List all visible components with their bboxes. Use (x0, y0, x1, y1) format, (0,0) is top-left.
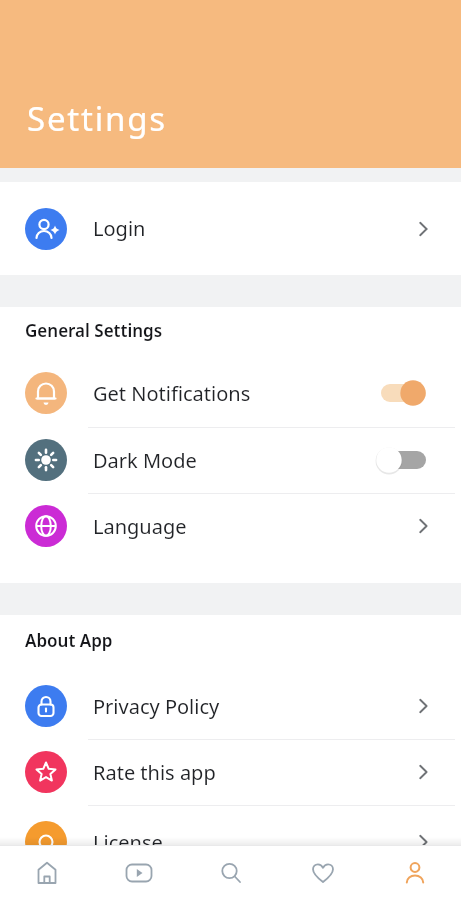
staticText: Rate this app (93, 759, 216, 786)
button[interactable] (369, 845, 461, 900)
staticText: Login (93, 215, 146, 242)
staticText: About App (25, 629, 113, 652)
button[interactable]: Get Notifications (0, 360, 461, 426)
button[interactable] (185, 845, 277, 900)
staticText: Dark Mode (93, 447, 197, 474)
button[interactable]: Rate this app (0, 739, 461, 805)
button[interactable]: Login (0, 182, 461, 275)
button[interactable]: Dark Mode (0, 427, 461, 493)
staticText: Get Notifications (93, 380, 251, 407)
button[interactable] (277, 845, 369, 900)
button[interactable]: License (0, 809, 461, 875)
staticText: Language (93, 513, 187, 540)
button[interactable]: Privacy Policy (0, 673, 461, 739)
staticText: License (93, 829, 163, 856)
button[interactable]: Language (0, 493, 461, 559)
staticText: General Settings (25, 319, 163, 342)
button[interactable] (0, 845, 93, 900)
staticText: Settings (27, 96, 167, 141)
staticText: Privacy Policy (93, 693, 220, 720)
button[interactable] (93, 845, 185, 900)
